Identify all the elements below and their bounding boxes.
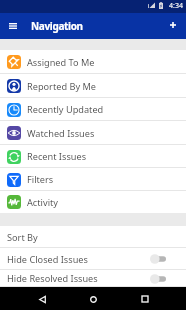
- button[interactable]: Hide Resolved Issues: [0, 270, 186, 287]
- button[interactable]: Recent Issues: [0, 145, 186, 168]
- staticText: Reported By Me: [27, 80, 96, 93]
- staticText: Recent Issues: [27, 150, 87, 163]
- button[interactable]: Recently Updated: [0, 98, 186, 121]
- button[interactable]: Add: [164, 17, 182, 35]
- button[interactable]: Hide Closed Issues: [0, 248, 186, 270]
- staticText: Hide Closed Issues: [7, 253, 88, 266]
- staticText: Navigation: [31, 19, 83, 33]
- staticText: Hide Resolved Issues: [7, 272, 98, 285]
- staticText: Activity: [27, 196, 59, 209]
- staticText: Sort By: [7, 231, 38, 244]
- button[interactable]: Assigned To Me: [0, 50, 186, 74]
- staticText: Watched Issues: [27, 127, 95, 140]
- button[interactable]: Activity: [0, 191, 186, 213]
- button[interactable]: Back: [32, 289, 52, 309]
- button[interactable]: Filters: [0, 168, 186, 191]
- button[interactable]: Watched Issues: [0, 121, 186, 145]
- staticText: Recently Updated: [27, 103, 104, 116]
- staticText: Assigned To Me: [27, 56, 95, 69]
- staticText: 4:34: [169, 1, 183, 11]
- button[interactable]: Open navigation drawer: [4, 17, 22, 35]
- staticText: Filters: [27, 173, 54, 186]
- button[interactable]: Home: [83, 289, 103, 309]
- button[interactable]: Recent apps: [135, 289, 155, 309]
- button[interactable]: Reported By Me: [0, 74, 186, 98]
